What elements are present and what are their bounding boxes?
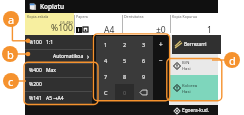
staticText: › xyxy=(87,52,90,61)
button[interactable]: 2 xyxy=(115,36,134,52)
button[interactable]: %141 xyxy=(25,92,92,105)
button[interactable]: − xyxy=(153,52,169,68)
staticText: B/N Hasi xyxy=(182,60,191,71)
staticText: 6 xyxy=(142,57,146,64)
staticText: A4 xyxy=(104,24,115,36)
button[interactable]: B/N Hasi xyxy=(169,56,218,75)
staticText: 8 xyxy=(123,73,127,80)
button[interactable]: Callout c xyxy=(3,73,19,89)
button[interactable]: C xyxy=(96,84,115,100)
staticText: C xyxy=(104,89,108,96)
staticText: Kopia Kopurua xyxy=(172,14,198,19)
staticText: Automatikoa xyxy=(53,53,84,60)
button[interactable]: 4 xyxy=(96,52,115,68)
staticText: 3 xyxy=(142,41,146,48)
staticText: Berrezarri xyxy=(184,41,207,48)
button[interactable]: 9 xyxy=(134,68,153,84)
button[interactable]: 1 xyxy=(96,36,115,52)
button[interactable]: Kopia Kopurua xyxy=(170,13,218,35)
staticText: ±0 xyxy=(156,24,166,36)
button[interactable]: 7 xyxy=(96,68,115,84)
other: Backspace xyxy=(140,89,147,96)
button[interactable] xyxy=(153,68,169,84)
staticText: GS-480 xyxy=(60,20,73,25)
button[interactable]: Kopia-eskala xyxy=(25,13,74,35)
staticText: d xyxy=(229,53,236,68)
staticText: Kopia-eskala xyxy=(27,14,49,19)
staticText: Dentsitatea xyxy=(124,14,144,19)
staticText: %100 xyxy=(51,22,73,34)
button[interactable]: 6 xyxy=(134,52,153,68)
button[interactable]: %200 xyxy=(25,78,92,91)
button[interactable]: Callout d xyxy=(224,52,240,68)
button[interactable] xyxy=(153,84,169,100)
button[interactable]: 3 xyxy=(134,36,153,52)
staticText: 7 xyxy=(104,73,108,80)
staticText: 9 xyxy=(142,73,146,80)
staticText: A5 →A4 xyxy=(46,95,64,102)
button[interactable]: Berrezarri xyxy=(172,35,221,54)
button[interactable]: 5 xyxy=(115,52,134,68)
button[interactable]: Callout b xyxy=(2,46,18,62)
staticText: Egoera-kud. xyxy=(182,107,210,114)
button[interactable]: Dentsitatea xyxy=(122,13,170,35)
button[interactable]: Automatikoa xyxy=(25,50,92,63)
staticText: %400 xyxy=(29,67,42,74)
staticText: + xyxy=(159,40,163,49)
button[interactable]: Papera xyxy=(74,13,122,35)
button[interactable]: 0 xyxy=(115,84,134,100)
staticText: 1:1 xyxy=(46,39,54,46)
button[interactable]: + xyxy=(153,36,169,52)
button[interactable]: %100 xyxy=(25,35,92,49)
button[interactable]: %400 xyxy=(25,64,92,77)
staticText: 1 xyxy=(207,24,212,36)
button[interactable]: 8 xyxy=(115,68,134,84)
staticText: Papera xyxy=(76,14,88,19)
button[interactable]: Callout a xyxy=(3,11,19,27)
staticText: c xyxy=(8,74,14,89)
staticText: Kolorea Hasi xyxy=(182,83,198,94)
button[interactable]: Backspace xyxy=(134,84,153,100)
staticText: %100 xyxy=(29,39,42,46)
staticText: %200 xyxy=(29,81,42,88)
button[interactable]: Kolorea Hasi xyxy=(169,75,218,101)
staticText: 2 xyxy=(123,41,127,48)
button[interactable]: Egoera-kud. xyxy=(174,107,210,114)
staticText: 5 xyxy=(123,57,127,64)
staticText: 0 xyxy=(123,89,127,96)
staticText: Kopiatu xyxy=(40,2,65,11)
staticText: − xyxy=(159,56,163,65)
staticText: 4 xyxy=(104,57,108,64)
staticText: a xyxy=(8,12,15,27)
staticText: b xyxy=(7,47,14,62)
staticText: %141 xyxy=(29,95,42,102)
staticText: Max xyxy=(46,67,56,74)
staticText: 1 xyxy=(104,41,108,48)
